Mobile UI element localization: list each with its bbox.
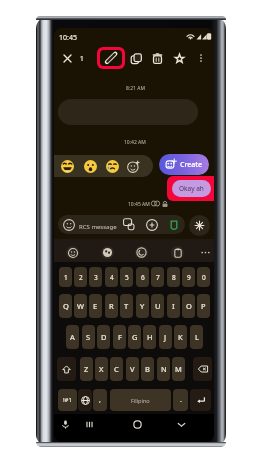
button[interactable]: H — [143, 325, 156, 349]
button[interactable]: Close — [58, 48, 76, 68]
staticText: N — [161, 364, 167, 374]
button[interactable]: Copy — [126, 47, 146, 69]
staticText: 8:21 AM — [126, 85, 145, 92]
button[interactable]: Shift — [57, 357, 76, 381]
staticText: F — [118, 332, 122, 342]
button[interactable]: Okay ah — [172, 180, 211, 197]
button[interactable] — [60, 159, 74, 173]
button[interactable]: 2 — [74, 267, 87, 287]
staticText: G — [132, 332, 138, 342]
button[interactable]: Backspace — [193, 357, 212, 381]
button[interactable]: Enter — [190, 389, 211, 411]
staticText: Y — [140, 301, 145, 311]
button[interactable]: R — [105, 294, 118, 318]
button[interactable]: J — [159, 325, 172, 349]
button[interactable]: 4 — [105, 267, 118, 287]
button[interactable]: 0 — [197, 267, 210, 287]
staticText: . — [180, 395, 182, 405]
button[interactable]: S — [82, 325, 95, 349]
button[interactable]: Voice input — [54, 413, 76, 435]
button[interactable]: Assistant — [189, 215, 210, 236]
button[interactable]: Z — [80, 357, 93, 381]
staticText: B — [145, 364, 150, 374]
button[interactable]: Stickers — [101, 246, 114, 259]
staticText: H — [147, 332, 153, 342]
staticText: 4 — [110, 273, 114, 282]
button[interactable] — [83, 159, 97, 173]
staticText: C — [114, 364, 119, 374]
button[interactable]: Delete — [147, 47, 167, 69]
button[interactable]: Emoji — [66, 246, 79, 259]
staticText: Filipino — [131, 397, 150, 404]
button[interactable]: More options — [191, 47, 211, 69]
button[interactable]: 3 — [89, 267, 102, 287]
button[interactable]: G — [128, 325, 141, 349]
staticText: RCS message — [79, 223, 117, 231]
button[interactable]: 1 — [59, 267, 72, 287]
button[interactable]: Hide keyboard — [170, 413, 192, 435]
button[interactable]: F — [113, 325, 126, 349]
staticText: 2 — [79, 273, 83, 282]
button[interactable]: 8 — [167, 267, 180, 287]
button[interactable]: X — [95, 357, 108, 381]
button[interactable]: Edit — [100, 50, 122, 66]
button[interactable]: U — [151, 294, 164, 318]
button[interactable]: A — [66, 325, 79, 349]
staticText: 1 — [64, 273, 68, 282]
staticText: M — [175, 364, 182, 374]
staticText: Okay ah — [179, 184, 204, 193]
button[interactable]: 5 — [120, 267, 133, 287]
staticText: I — [172, 301, 175, 311]
button[interactable]: Star — [169, 47, 189, 69]
staticText: Create — [180, 160, 202, 170]
staticText: U — [155, 301, 161, 311]
staticText: J — [164, 332, 167, 342]
staticText: Q — [63, 301, 69, 311]
staticText: 9 — [187, 273, 191, 282]
button[interactable] — [126, 159, 140, 173]
staticText: A — [70, 332, 75, 342]
button[interactable]: P — [197, 294, 210, 318]
staticText: P — [201, 301, 206, 311]
staticText: V — [130, 364, 135, 374]
button[interactable]: 9 — [182, 267, 195, 287]
button[interactable]: GIF — [135, 246, 148, 259]
button[interactable]: 7 — [151, 267, 164, 287]
staticText: 10:45 — [59, 33, 77, 43]
staticText: 10:45 AM — [128, 201, 150, 208]
button[interactable] — [105, 159, 119, 173]
button[interactable]: More — [197, 244, 213, 260]
button[interactable]: !#1 — [58, 389, 77, 411]
staticText: L — [195, 332, 199, 342]
button[interactable]: Filipino — [110, 389, 171, 411]
staticText: 6 — [141, 273, 145, 282]
button[interactable]: I — [167, 294, 180, 318]
button[interactable]: Clipboard — [171, 246, 184, 259]
button[interactable]: K — [174, 325, 187, 349]
button[interactable]: 6 — [136, 267, 149, 287]
staticText: , — [99, 395, 101, 405]
button[interactable]: N — [157, 357, 170, 381]
button[interactable]: . — [173, 389, 188, 411]
button[interactable]: , — [93, 389, 107, 411]
button[interactable]: V — [126, 357, 139, 381]
staticText: 5 — [125, 273, 129, 282]
button[interactable]: Q — [59, 294, 72, 318]
staticText: 10:42 AM — [124, 139, 146, 146]
button[interactable]: Language — [78, 389, 92, 411]
button[interactable]: Y — [136, 294, 149, 318]
button[interactable]: L — [190, 325, 203, 349]
button[interactable]: Home — [126, 413, 148, 435]
button[interactable]: W — [74, 294, 87, 318]
button[interactable] — [58, 99, 198, 125]
button[interactable]: T — [120, 294, 133, 318]
button[interactable]: Recents — [78, 413, 100, 435]
button[interactable]: B — [141, 357, 154, 381]
button[interactable] — [58, 215, 185, 234]
button[interactable]: M — [172, 357, 185, 381]
button[interactable]: O — [182, 294, 195, 318]
button[interactable]: E — [89, 294, 102, 318]
button[interactable]: Create — [159, 154, 209, 175]
button[interactable]: C — [110, 357, 123, 381]
button[interactable]: D — [97, 325, 110, 349]
